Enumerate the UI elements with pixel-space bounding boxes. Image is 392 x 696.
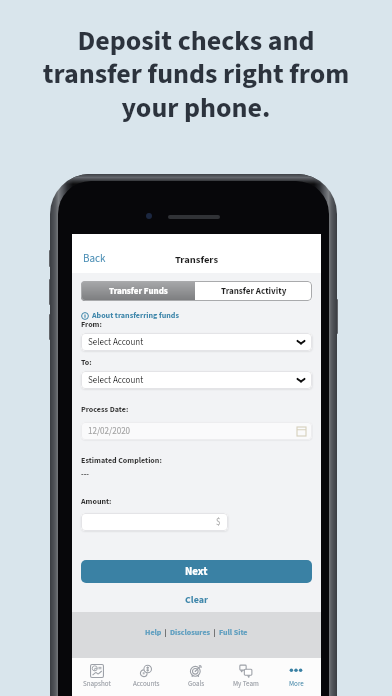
button[interactable]: My Team — [221, 658, 271, 696]
staticText: | — [163, 627, 169, 638]
button[interactable]: More — [271, 658, 321, 696]
staticText: To: — [81, 357, 92, 368]
staticText: Back — [83, 251, 106, 267]
button[interactable]: $ — [81, 513, 228, 531]
staticText: Next — [185, 564, 208, 580]
button[interactable]: Snapshot — [72, 658, 121, 696]
staticText: Process Date: — [81, 404, 129, 415]
staticText: From: — [81, 319, 102, 330]
staticText: $ — [216, 516, 221, 529]
staticText: Clear — [185, 593, 208, 607]
button[interactable]: Goals — [171, 658, 221, 696]
staticText: Help — [145, 627, 162, 638]
other: Goals — [189, 664, 203, 678]
staticText: Amount: — [81, 496, 112, 507]
staticText: Select Account — [88, 374, 144, 387]
other: My Team — [239, 664, 253, 678]
button[interactable]: Select Account — [81, 371, 312, 389]
staticText: 12/02/2020 — [88, 425, 131, 438]
button[interactable]: Transfer Funds — [81, 281, 195, 301]
button[interactable]: Back — [81, 250, 108, 268]
button[interactable]: Select Account — [81, 333, 312, 351]
staticText: Accounts — [133, 679, 160, 689]
button[interactable]: 12/02/2020 — [81, 422, 312, 440]
button[interactable]: Next — [81, 560, 312, 583]
staticText: --- — [81, 468, 89, 479]
button[interactable]: Full Site — [218, 627, 249, 638]
staticText: Transfer Funds — [109, 285, 168, 298]
other: Snapshot — [90, 664, 104, 678]
button[interactable]: Disclosures — [169, 627, 212, 638]
staticText: Transfers — [72, 252, 321, 267]
staticText: Select Account — [88, 336, 144, 349]
staticText: Deposit checks and transfer funds right … — [12, 21, 380, 129]
staticText: Disclosures — [170, 627, 211, 638]
button[interactable]: Help — [144, 627, 163, 638]
staticText: Snapshot — [83, 679, 111, 689]
staticText: About transferring funds — [92, 310, 179, 321]
staticText: My Team — [233, 679, 259, 689]
staticText: Estimated Completion: — [81, 455, 162, 466]
staticText: | — [212, 627, 218, 638]
button[interactable]: Transfer Activity — [195, 281, 312, 301]
other: Pick date — [297, 427, 306, 436]
button[interactable]: About transferring funds — [81, 310, 179, 321]
button[interactable]: Accounts — [121, 658, 171, 696]
other: Accounts — [139, 664, 153, 678]
button[interactable]: Clear — [179, 591, 214, 609]
staticText: Full Site — [219, 627, 248, 638]
other: More — [289, 664, 303, 678]
staticText: More — [289, 679, 304, 689]
staticText: Goals — [188, 679, 205, 689]
staticText: Transfer Activity — [221, 285, 287, 298]
